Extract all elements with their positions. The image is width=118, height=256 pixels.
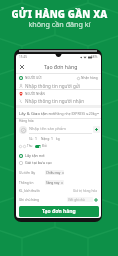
- staticText: Lấy tận nơi: [25, 153, 45, 158]
- button[interactable]: Đóng: [17, 62, 26, 71]
- button[interactable]: Lấy tận nơi: [19, 153, 45, 158]
- staticText: Giá trị hàng hóa: [73, 189, 98, 193]
- staticText: Thông tin: [19, 181, 34, 185]
- button[interactable]: Chuyển đổi: [35, 145, 41, 148]
- staticText: Tạo đơn hàng: [42, 208, 76, 215]
- staticText: Viết ghi chú: [68, 198, 85, 202]
- staticText: kg: [56, 137, 60, 141]
- staticText: GỬI HÀNG GẦN XA: [11, 8, 108, 21]
- staticText: Hàng hóa: [19, 119, 34, 123]
- staticText: Gửi tại bưu cục: [25, 160, 52, 165]
- staticText: Chiều nay: [46, 171, 61, 175]
- staticText: Nặng:: [41, 137, 50, 141]
- staticText: Đổi: [42, 144, 47, 148]
- staticText: Ghi chú hàng: [19, 198, 39, 202]
- staticText: 58%: [91, 55, 98, 59]
- staticText: Lấy & Giao tận nơi: [19, 111, 55, 117]
- button[interactable]: NGƯỜI GỬI: [16, 74, 101, 90]
- button[interactable]: NGƯỜI NHẬN: [16, 90, 101, 105]
- staticText: Ưu tiên lấy: [19, 171, 36, 175]
- button[interactable]: Viết ghi chú: [67, 197, 93, 202]
- button[interactable]: Thông tin: [19, 179, 64, 186]
- button[interactable]: Thêm sản phẩm: [93, 126, 100, 133]
- button[interactable]: Gửi tại bưu cục: [19, 160, 52, 165]
- staticText: 15:25: [19, 55, 28, 59]
- button[interactable]: Tạo đơn hàng: [19, 206, 99, 217]
- staticText: Nhập thông tin người gửi: [25, 83, 81, 89]
- staticText: không cần đăng kí: [28, 19, 91, 29]
- staticText: Thu: [27, 144, 33, 148]
- staticText: 1: [35, 136, 37, 141]
- staticText: Tạo đơn hàng: [44, 63, 78, 70]
- staticText: NGƯỜI GỬI: [25, 76, 42, 80]
- staticText: KL, kích thước: [19, 189, 40, 193]
- staticText: SL:: [29, 137, 34, 141]
- staticText: Nhập tên sản phẩm: [29, 126, 67, 131]
- staticText: Nhận hàng: [81, 76, 98, 80]
- button[interactable]: Ưu tiên lấy: [19, 169, 64, 176]
- staticText: NGƯỜI NHẬN: [25, 92, 45, 96]
- staticText: Hàng nhẹ EXPRESS ≤20kg: [55, 111, 97, 116]
- staticText: Nhập thông tin người nhận: [25, 98, 85, 104]
- button[interactable]: Lấy & Giao tận nơi: [19, 109, 98, 118]
- staticText: Sáng nay: [46, 181, 60, 185]
- staticText: 1: [51, 136, 53, 141]
